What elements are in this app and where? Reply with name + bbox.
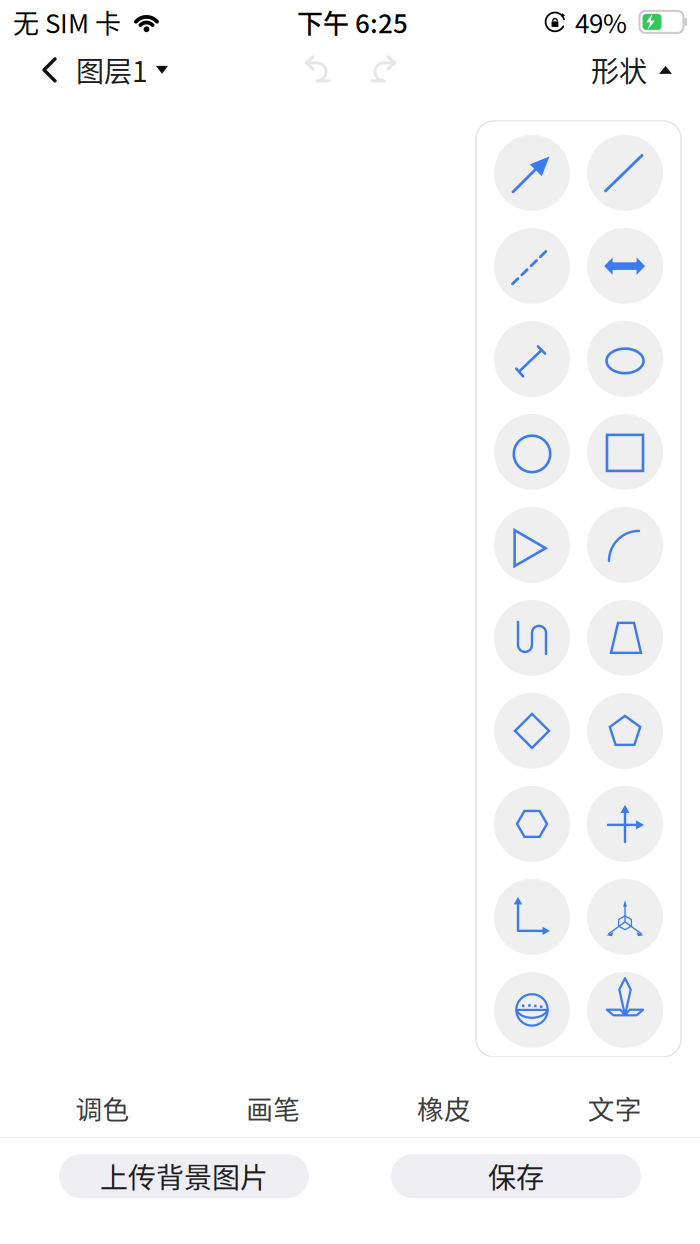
button[interactable]: 椭圆: [587, 321, 663, 397]
button[interactable]: 上传背景图片: [59, 1154, 309, 1198]
button[interactable]: 坐标轴: [587, 786, 663, 862]
button[interactable]: 文字: [529, 1079, 700, 1137]
button[interactable]: 梯形: [587, 600, 663, 676]
button[interactable]: 正方形: [587, 414, 663, 490]
button[interactable]: 菱形: [494, 693, 570, 769]
staticText: 保存: [488, 1156, 544, 1196]
button[interactable]: 箭头: [494, 135, 570, 211]
button[interactable]: 重做: [361, 47, 407, 93]
button[interactable]: 三角形: [494, 507, 570, 583]
button[interactable]: 画笔: [188, 1079, 359, 1137]
staticText: 49%: [575, 3, 627, 41]
staticText: 图层1: [76, 50, 148, 90]
staticText: 上传背景图片: [100, 1156, 268, 1196]
button[interactable]: 虚线: [494, 228, 570, 304]
button[interactable]: 球体: [494, 972, 570, 1048]
staticText: 调色: [75, 1089, 129, 1127]
button[interactable]: 图层1: [0, 44, 178, 96]
button[interactable]: 三叶: [587, 972, 663, 1048]
button[interactable]: 三维坐标: [587, 879, 663, 955]
button[interactable]: 橡皮: [358, 1079, 529, 1137]
button[interactable]: 尺寸线: [494, 321, 570, 397]
staticText: 下午 6:25: [297, 3, 408, 41]
button[interactable]: 圆弧: [587, 507, 663, 583]
staticText: 无 SIM 卡: [13, 3, 121, 41]
button[interactable]: 形状: [581, 44, 700, 96]
button[interactable]: 撤销: [294, 47, 340, 93]
button[interactable]: 保存: [391, 1154, 641, 1198]
button[interactable]: 双向箭头: [587, 228, 663, 304]
button[interactable]: 曲线: [494, 600, 570, 676]
button[interactable]: 圆形: [494, 414, 570, 490]
button[interactable]: 六边形: [494, 786, 570, 862]
button[interactable]: 直线: [587, 135, 663, 211]
button[interactable]: 五边形: [587, 693, 663, 769]
staticText: 画笔: [246, 1089, 300, 1127]
staticText: 文字: [588, 1089, 642, 1127]
button[interactable]: 调色: [17, 1079, 188, 1137]
staticText: 形状: [591, 50, 647, 90]
button[interactable]: 直角坐标: [494, 879, 570, 955]
staticText: 橡皮: [417, 1089, 471, 1127]
